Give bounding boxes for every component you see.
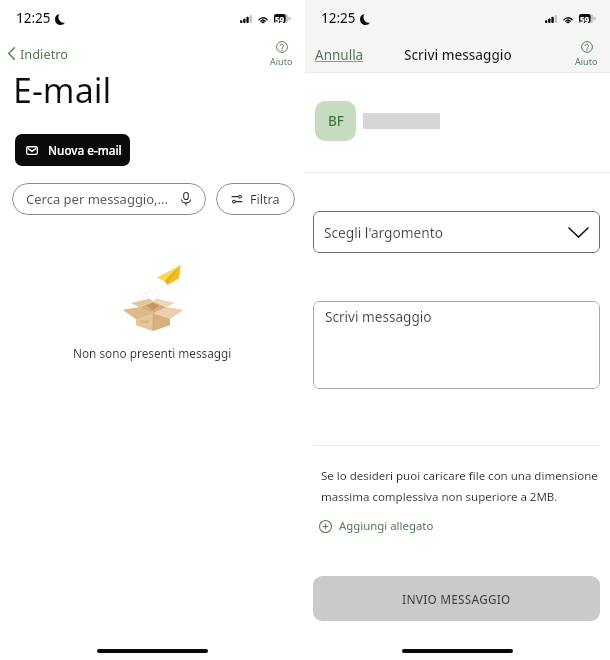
button[interactable]: Indietro	[6, 43, 71, 64]
staticText: Aiuto	[575, 55, 598, 67]
staticText: 59	[275, 14, 285, 23]
staticText: Aggiungi allegato	[339, 518, 434, 534]
button[interactable]: Filtra	[216, 183, 295, 215]
button[interactable]: Scegli l'argomento	[313, 211, 600, 253]
button[interactable]: Ricerca vocale	[181, 192, 191, 206]
button[interactable]: Annulla	[313, 44, 366, 66]
staticText: Cerca per messaggio,...	[26, 190, 169, 208]
staticText: Se lo desideri puoi caricare file con un…	[321, 468, 598, 505]
button[interactable]: Aiuto	[270, 41, 293, 67]
staticText: Scrivi messaggio	[404, 46, 512, 64]
button[interactable]: Aggiungi allegato	[317, 516, 436, 536]
staticText: Filtra	[250, 191, 280, 208]
button[interactable]: Aiuto	[575, 41, 598, 67]
staticText: Annulla	[315, 46, 364, 64]
staticText: INVIO MESSAGGIO	[402, 591, 511, 607]
staticText: Non sono presenti messaggi	[73, 345, 232, 361]
button[interactable]: INVIO MESSAGGIO	[313, 576, 600, 621]
staticText: Indietro	[20, 45, 69, 62]
staticText: 59	[580, 14, 590, 23]
staticText: E-mail	[13, 67, 112, 113]
staticText: BF	[328, 112, 344, 130]
button[interactable]: Scrivi messaggio	[313, 301, 600, 389]
staticText: Nuova e-mail	[48, 142, 122, 158]
staticText: 12:25	[321, 9, 356, 27]
staticText: Scegli l'argomento	[324, 223, 443, 242]
staticText: 12:25	[16, 9, 51, 27]
button[interactable]: Cerca per messaggio,...	[12, 183, 206, 215]
staticText: Aiuto	[270, 55, 293, 67]
staticText: Scrivi messaggio	[325, 307, 432, 326]
button[interactable]: Nuova e-mail	[15, 134, 130, 166]
